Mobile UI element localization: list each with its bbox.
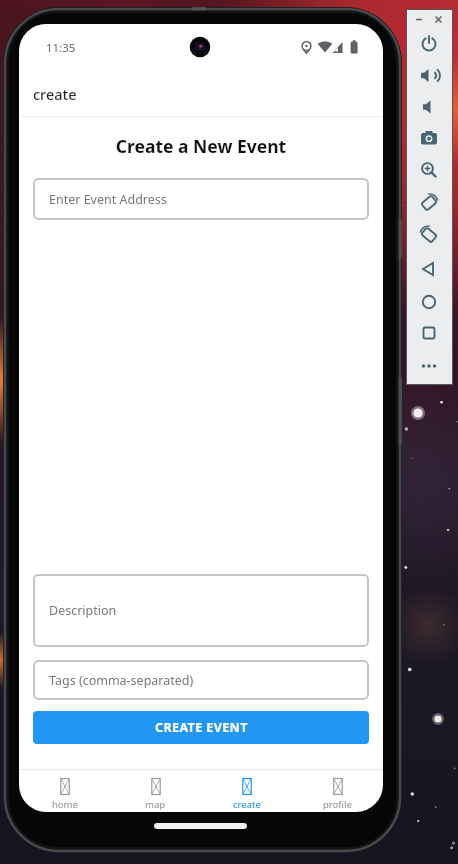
staticText: profile [323, 798, 352, 811]
button[interactable]: profile [292, 778, 383, 812]
button[interactable]: home [19, 778, 110, 812]
button[interactable]: create [201, 778, 292, 812]
button[interactable]: Description [33, 574, 369, 647]
staticText: create [233, 798, 261, 811]
staticText: 11:35 [46, 40, 76, 56]
staticText: Description [49, 602, 117, 619]
staticText: home [52, 798, 78, 811]
button[interactable]: map [110, 778, 201, 812]
staticText: map [145, 798, 166, 811]
staticText: CREATE EVENT [155, 719, 248, 736]
button[interactable]: Tags (comma-separated) [33, 660, 369, 700]
staticText: Enter Event Address [49, 191, 167, 208]
button[interactable]: Enter Event Address [33, 178, 369, 220]
button[interactable]: CREATE EVENT [33, 711, 369, 744]
staticText: Tags (comma-separated) [49, 672, 194, 689]
staticText: create [33, 84, 77, 104]
staticText: Create a New Event [19, 134, 383, 158]
